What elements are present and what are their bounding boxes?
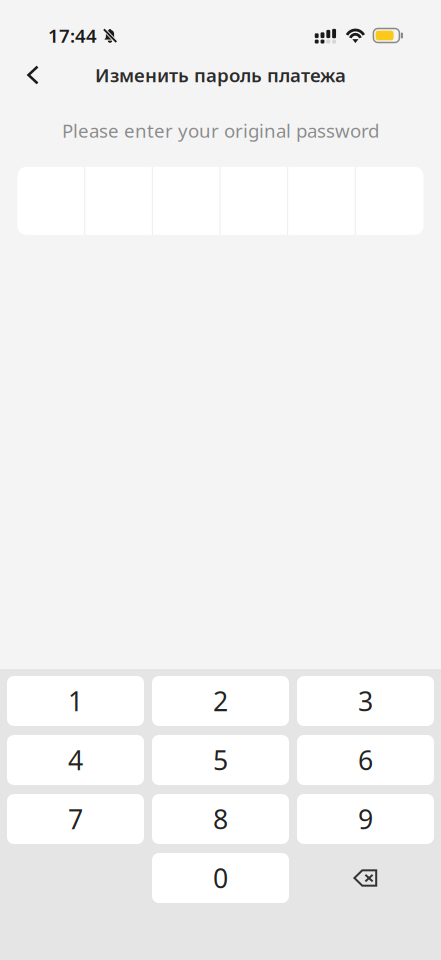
- staticText: 1: [68, 683, 83, 719]
- button[interactable]: 2: [152, 676, 289, 726]
- staticText: 9: [358, 801, 373, 837]
- button[interactable]: Delete: [297, 853, 434, 903]
- button[interactable]: 9: [297, 794, 434, 844]
- staticText: 4: [68, 742, 83, 778]
- staticText: 6: [358, 742, 373, 778]
- staticText: 17:44: [48, 23, 97, 48]
- staticText: 7: [68, 801, 83, 837]
- button[interactable]: 5: [152, 735, 289, 785]
- button[interactable]: 4: [7, 735, 144, 785]
- button[interactable]: 7: [7, 794, 144, 844]
- button[interactable]: 3: [297, 676, 434, 726]
- staticText: 0: [213, 860, 228, 896]
- staticText: Please enter your original password: [62, 118, 379, 143]
- button[interactable]: 8: [152, 794, 289, 844]
- button[interactable]: Back: [10, 55, 56, 95]
- button[interactable]: 6: [297, 735, 434, 785]
- button[interactable]: 1: [7, 676, 144, 726]
- button[interactable]: 0: [152, 853, 289, 903]
- staticText: Изменить пароль платежа: [95, 63, 346, 87]
- staticText: 8: [213, 801, 228, 837]
- staticText: 3: [358, 683, 373, 719]
- staticText: 5: [213, 742, 228, 778]
- staticText: 2: [213, 683, 228, 719]
